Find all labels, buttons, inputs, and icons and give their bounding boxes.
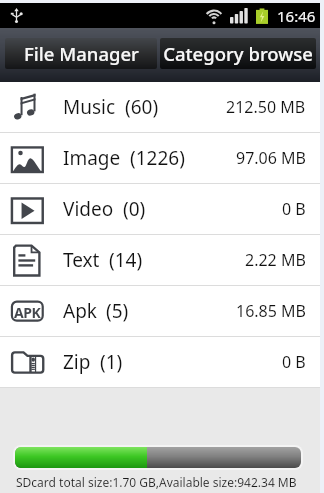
staticText: (5) [106,298,129,324]
staticText: Category browse [163,41,313,66]
button[interactable]: Music [0,82,320,132]
staticText: Text [63,247,100,273]
other: USB connected [10,7,23,24]
button[interactable]: Zip [0,337,320,387]
staticText: 0 B [282,198,306,220]
staticText: 97.06 MB [236,147,306,169]
button[interactable]: APK [0,286,320,336]
staticText: 16.85 MB [236,300,306,322]
staticText: 212.50 MB [226,96,306,118]
staticText: Image [63,145,121,171]
staticText: Apk [63,298,97,324]
staticText: 0 B [282,351,306,373]
staticText: Video [63,196,114,222]
staticText: Zip [63,349,91,375]
staticText: (1) [100,349,123,375]
staticText: APK [14,303,41,322]
button[interactable]: Text [0,235,320,285]
button[interactable]: Image [0,133,320,183]
staticText: SDcard total size:1.70 GB,Available size… [16,474,297,490]
button[interactable]: Video [0,184,320,234]
staticText: (0) [123,196,146,222]
staticText: File Manager [24,41,139,66]
button[interactable]: Category browse [160,38,316,69]
staticText: 2.22 MB [245,249,306,271]
staticText: (1226) [130,145,185,171]
staticText: (14) [109,247,143,273]
button[interactable]: File Manager [5,38,157,69]
staticText: Music [63,94,116,120]
staticText: 16:46 [277,6,316,26]
staticText: (60) [125,94,159,120]
